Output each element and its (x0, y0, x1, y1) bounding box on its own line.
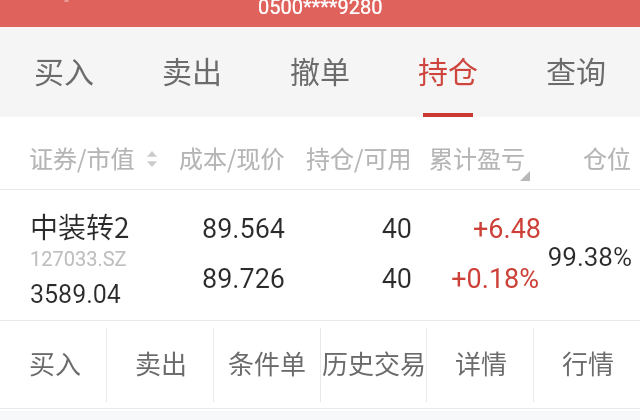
button[interactable]: 详情 (426, 322, 533, 409)
button[interactable]: 证券/市值 (29, 140, 157, 175)
staticText: 3589.04 (30, 280, 121, 309)
staticText: 查询 (546, 48, 606, 91)
button[interactable]: 撤单 (256, 27, 384, 117)
staticText: 0500****9280 (258, 0, 383, 18)
button[interactable]: 行情 (533, 322, 640, 409)
button[interactable]: Account 0500****9280 (0, 0, 640, 27)
button[interactable]: 仓位 (583, 140, 631, 175)
staticText: 买入 (34, 48, 94, 91)
staticText: 89.564 (160, 213, 285, 245)
staticText: 历史交易 (322, 344, 427, 382)
staticText: +6.48 (420, 213, 541, 245)
button[interactable]: 卖出 (106, 322, 212, 409)
button[interactable]: 累计盈亏 (429, 140, 525, 175)
staticText: 卖出 (162, 48, 222, 91)
button[interactable]: 持仓/可用 (306, 140, 412, 175)
staticText: 证券/市值 (29, 140, 135, 175)
button[interactable]: 买入 (0, 27, 128, 117)
staticText: 中装转2 (30, 206, 130, 247)
staticText: 持仓 (418, 48, 478, 91)
button[interactable]: 条件单 (212, 322, 319, 409)
button[interactable]: 卖出 (128, 27, 256, 117)
button[interactable]: 中装转2 (0, 190, 640, 321)
staticText: +0.18% (420, 263, 539, 295)
staticText: 89.726 (160, 263, 285, 295)
staticText: 条件单 (228, 344, 307, 382)
button[interactable]: 成本/现价 (179, 140, 285, 175)
staticText: 买入 (29, 344, 82, 382)
button[interactable]: 持仓 (384, 27, 512, 117)
staticText: 撤单 (290, 48, 350, 91)
staticText: 行情 (562, 344, 615, 382)
button[interactable]: 历史交易 (319, 322, 426, 409)
button[interactable]: 买入 (0, 322, 106, 409)
staticText: 40 (310, 213, 412, 245)
staticText: 累计盈亏 (429, 140, 525, 175)
staticText: 卖出 (135, 344, 188, 382)
staticText: 99.38% (530, 242, 632, 272)
staticText: 40 (310, 263, 412, 295)
staticText: 127033.SZ (30, 247, 127, 270)
button[interactable]: 查询 (512, 27, 640, 117)
staticText: 详情 (455, 344, 508, 382)
